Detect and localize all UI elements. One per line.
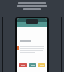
button[interactable]: Later xyxy=(38,63,45,67)
button[interactable]: Decline xyxy=(19,63,27,67)
button[interactable]: Accept xyxy=(29,63,36,67)
button[interactable]: App title xyxy=(26,19,38,24)
